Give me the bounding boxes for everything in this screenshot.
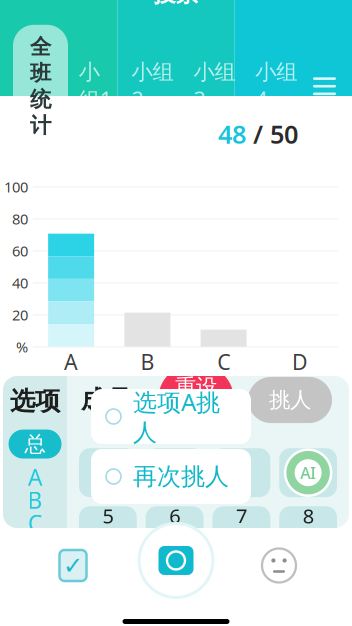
staticText: 再次挑人 [133,462,229,491]
button[interactable]: 小组2 [123,50,183,122]
staticText: 1 [102,444,113,471]
staticText: 48 [218,117,246,151]
staticText: 选项A挑人 [133,386,220,447]
button[interactable]: B [8,488,61,511]
staticText: 重设答案 [175,374,217,426]
staticText: 小组3 [193,59,235,113]
staticText: 80 [12,209,28,229]
staticText: B [140,348,154,376]
button[interactable]: 1 [79,448,137,497]
staticText: A [64,348,78,376]
button[interactable]: 挑人 [248,377,332,423]
button[interactable]: 小组3 [184,50,244,122]
staticText: 2 [169,444,180,471]
staticText: 小组2 [132,59,174,113]
staticText: 5 [102,502,113,529]
staticText: 挑人 [269,387,311,413]
staticText: C [217,348,230,376]
button[interactable]: C [8,511,61,534]
staticText: 选项 [10,385,60,416]
staticText: 总 [24,431,45,457]
staticText: 6 [169,502,180,529]
staticText: 8 [303,502,314,529]
staticText: 7 [236,502,247,529]
button[interactable]: 总 [8,429,61,458]
button[interactable]: Camera [139,543,213,617]
staticText: 100 [4,177,28,197]
button[interactable]: 全班统计 [13,25,68,148]
button[interactable]: 小组4 [246,50,306,122]
staticText: A [101,471,115,501]
staticText: B [27,485,42,515]
staticText: 3 [236,444,247,471]
button[interactable]: Reactions [250,540,308,590]
button[interactable]: Quiz [44,540,102,590]
staticText: A [168,471,182,501]
button[interactable]: 6 [146,506,204,555]
staticText: C [28,508,42,538]
staticText: A [168,529,182,559]
button[interactable]: 8 [279,506,337,555]
button[interactable]: 5 [79,506,137,555]
button[interactable]: 小组1 [70,50,121,122]
button[interactable]: 2 [146,448,204,497]
staticText: 40 [12,273,28,293]
button[interactable]: A [8,465,61,488]
button[interactable]: 重设答案 [158,364,234,436]
button[interactable]: 3 [212,448,270,497]
staticText: % [16,337,28,357]
button[interactable]: 选项A挑人 [91,389,251,444]
staticText: D [292,348,308,376]
button[interactable]: 再次挑人 [91,449,251,504]
staticText: 成员 [81,384,131,415]
staticText: 60 [12,241,28,261]
staticText: ✓ [63,552,83,579]
staticText: A [28,462,42,492]
staticText: 小组1 [79,59,112,113]
staticText: 20 [12,305,28,325]
staticText: 全班统计 [30,34,51,139]
staticText: 小组4 [255,59,297,113]
staticText: / 50 [246,117,298,151]
button[interactable]: 7 [212,506,270,555]
button[interactable]: AI [279,448,337,497]
button[interactable]: Menu [308,68,341,104]
staticText: AI [300,462,316,483]
staticText: 投票 [153,0,199,8]
